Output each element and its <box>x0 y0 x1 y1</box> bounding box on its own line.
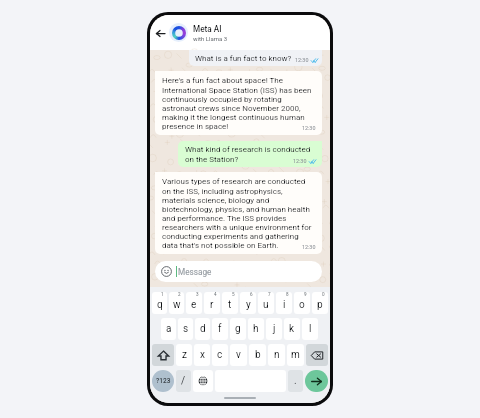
staticText: t <box>228 299 232 311</box>
staticText: x <box>200 349 205 361</box>
other: Emoji <box>161 266 172 277</box>
staticText: 8 <box>286 292 289 297</box>
button[interactable]: g <box>230 318 246 340</box>
button[interactable]: 1 <box>152 292 167 314</box>
staticText: w <box>173 299 181 311</box>
staticText: l <box>309 323 312 335</box>
button[interactable]: / <box>176 370 191 392</box>
staticText: n <box>274 349 280 361</box>
button[interactable]: Send <box>305 370 328 392</box>
button[interactable]: What kind of research is conducted on th… <box>178 141 322 167</box>
staticText: 4 <box>214 292 217 297</box>
staticText: Various types of research are conducted … <box>162 177 316 249</box>
staticText: g <box>235 323 241 335</box>
staticText: o <box>299 299 305 311</box>
staticText: 12:30 <box>302 125 316 131</box>
staticText: What kind of research is conducted on th… <box>185 145 316 163</box>
staticText: ?123 <box>156 377 171 385</box>
button[interactable]: Emoji <box>155 261 322 282</box>
staticText: e <box>191 299 197 311</box>
staticText: a <box>166 323 172 335</box>
staticText: j <box>273 323 276 335</box>
button[interactable]: f <box>212 318 228 340</box>
staticText: 12:30 <box>295 57 309 63</box>
staticText: 7 <box>268 292 271 297</box>
staticText: c <box>217 349 223 361</box>
staticText: with Llama 3 <box>193 35 228 42</box>
button[interactable]: ?123 <box>152 370 174 392</box>
button[interactable]: 9 <box>294 292 310 314</box>
button[interactable]: 5 <box>222 292 238 314</box>
staticText: 1 <box>161 292 164 297</box>
button[interactable]: What is a fun fact to know? <box>189 50 322 66</box>
staticText: q <box>157 299 163 311</box>
staticText: v <box>236 349 241 361</box>
button[interactable]: v <box>230 344 247 366</box>
button[interactable]: 6 <box>240 292 256 314</box>
staticText: . <box>294 375 297 387</box>
button[interactable]: k <box>284 318 300 340</box>
button[interactable]: n <box>268 344 285 366</box>
staticText: 12:30 <box>302 244 316 250</box>
staticText: What is a fun fact to know? <box>195 54 292 63</box>
staticText: p <box>317 299 323 311</box>
staticText: k <box>289 323 295 335</box>
staticText: m <box>291 349 300 361</box>
staticText: d <box>200 323 206 335</box>
staticText: i <box>283 299 286 311</box>
button[interactable]: s <box>178 318 193 340</box>
button[interactable]: Backspace <box>306 344 328 366</box>
button[interactable]: Various types of research are conducted … <box>155 172 322 254</box>
button[interactable]: l <box>302 318 318 340</box>
staticText: 2 <box>178 292 181 297</box>
button[interactable]: 8 <box>276 292 292 314</box>
staticText: / <box>181 375 186 387</box>
staticText: 9 <box>304 292 307 297</box>
staticText: 5 <box>232 292 235 297</box>
button[interactable]: a <box>161 318 176 340</box>
button[interactable]: 3 <box>186 292 202 314</box>
button[interactable]: Back <box>153 26 167 40</box>
button[interactable]: Shift <box>152 344 174 366</box>
button[interactable]: 7 <box>258 292 274 314</box>
button[interactable]: Here's a fun fact about space! The Inter… <box>155 71 322 135</box>
staticText: b <box>255 349 261 361</box>
button[interactable]: Change language <box>193 370 213 392</box>
staticText: z <box>182 349 187 361</box>
staticText: 12:30 <box>293 158 307 164</box>
button[interactable]: 4 <box>204 292 220 314</box>
staticText: h <box>253 323 259 335</box>
button[interactable]: . <box>288 370 303 392</box>
staticText: 3 <box>196 292 199 297</box>
staticText: Here's a fun fact about space! The Inter… <box>162 76 316 130</box>
staticText: 0 <box>322 292 325 297</box>
staticText: y <box>246 299 251 311</box>
staticText: u <box>263 299 269 311</box>
button[interactable]: d <box>195 318 210 340</box>
button[interactable]: h <box>248 318 264 340</box>
button[interactable]: 2 <box>169 292 184 314</box>
staticText: r <box>210 299 214 311</box>
staticText: 6 <box>250 292 253 297</box>
staticText: s <box>183 323 189 335</box>
staticText: Meta AI <box>193 24 222 34</box>
staticText: f <box>218 323 222 335</box>
button[interactable]: x <box>194 344 210 366</box>
button[interactable]: j <box>266 318 282 340</box>
button[interactable]: b <box>249 344 266 366</box>
button[interactable]: c <box>212 344 228 366</box>
button[interactable]: m <box>287 344 304 366</box>
button[interactable]: 0 <box>312 292 328 314</box>
button[interactable]: z <box>176 344 192 366</box>
staticText: Message <box>178 267 212 277</box>
